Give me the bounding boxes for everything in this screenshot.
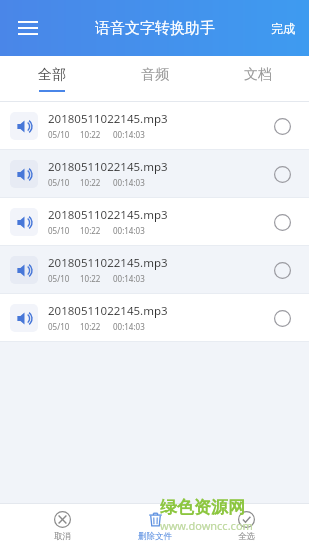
button[interactable]: Select item bbox=[265, 157, 299, 191]
button[interactable]: 20180511022145.mp3 bbox=[0, 102, 309, 149]
staticText: 删除文件 bbox=[138, 531, 172, 542]
button[interactable]: Select item bbox=[265, 109, 299, 143]
staticText: 完成 bbox=[271, 21, 295, 36]
button[interactable]: 全部 bbox=[0, 56, 103, 102]
button[interactable]: 音频 bbox=[103, 56, 206, 102]
button[interactable]: 文档 bbox=[206, 56, 309, 102]
staticText: 音频 bbox=[141, 66, 169, 84]
staticText: 00:14:03 bbox=[113, 225, 145, 236]
staticText: www.downcc.com bbox=[160, 518, 253, 533]
button[interactable]: Select item bbox=[265, 205, 299, 239]
button[interactable]: Menu bbox=[8, 8, 48, 48]
staticText: 00:14:03 bbox=[113, 177, 145, 188]
staticText: 文档 bbox=[244, 66, 272, 84]
staticText: 20180511022145.mp3 bbox=[48, 207, 168, 223]
staticText: 语音文字转换助手 bbox=[95, 19, 215, 38]
button[interactable]: 完成 bbox=[257, 11, 309, 46]
button[interactable]: 20180511022145.mp3 bbox=[0, 294, 309, 341]
staticText: 10:22 bbox=[80, 225, 101, 236]
staticText: 00:14:03 bbox=[113, 273, 145, 284]
staticText: 绿色资源网 bbox=[160, 497, 245, 518]
staticText: 05/10 bbox=[48, 225, 70, 236]
staticText: 20180511022145.mp3 bbox=[48, 303, 168, 319]
staticText: 05/10 bbox=[48, 321, 70, 332]
button[interactable]: Select item bbox=[265, 253, 299, 287]
button[interactable]: 删除文件 bbox=[126, 507, 184, 546]
button[interactable]: 20180511022145.mp3 bbox=[0, 246, 309, 293]
staticText: 05/10 bbox=[48, 273, 70, 284]
staticText: 20180511022145.mp3 bbox=[48, 159, 168, 175]
staticText: 10:22 bbox=[80, 177, 101, 188]
staticText: 全选 bbox=[238, 531, 255, 542]
staticText: 05/10 bbox=[48, 177, 70, 188]
staticText: 20180511022145.mp3 bbox=[48, 111, 168, 127]
staticText: 05/10 bbox=[48, 129, 70, 140]
staticText: 00:14:03 bbox=[113, 129, 145, 140]
staticText: 10:22 bbox=[80, 273, 101, 284]
staticText: 00:14:03 bbox=[113, 321, 145, 332]
button[interactable]: 20180511022145.mp3 bbox=[0, 198, 309, 245]
button[interactable]: 20180511022145.mp3 bbox=[0, 150, 309, 197]
staticText: 全部 bbox=[38, 66, 66, 84]
staticText: 10:22 bbox=[80, 321, 101, 332]
staticText: 取消 bbox=[54, 531, 71, 542]
button[interactable]: 取消 bbox=[42, 507, 83, 546]
staticText: 10:22 bbox=[80, 129, 101, 140]
button[interactable]: Select item bbox=[265, 301, 299, 335]
button[interactable]: 全选 bbox=[226, 507, 267, 546]
staticText: 20180511022145.mp3 bbox=[48, 255, 168, 271]
